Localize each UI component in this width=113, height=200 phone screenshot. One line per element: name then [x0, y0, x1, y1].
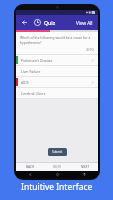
button[interactable]: NEXT — [71, 163, 98, 171]
staticText: Quiz — [44, 19, 56, 26]
staticText: Which of the following would be a cause … — [20, 35, 94, 39]
button[interactable]: Parkinson's Disease — [16, 55, 98, 65]
staticText: Cerebral Ulcers — [21, 91, 94, 96]
staticText: Intuitive Interface — [21, 181, 93, 193]
button[interactable]: Cerebral Ulcers — [16, 88, 98, 98]
staticText: Liver Failure — [21, 69, 94, 74]
staticText: Submit — [52, 150, 63, 154]
button[interactable]: Liver Failure — [16, 66, 98, 76]
button[interactable]: Submit — [48, 148, 67, 156]
staticText: 00:15 — [53, 165, 62, 169]
staticText: Parkinson's Disease — [21, 58, 91, 63]
button[interactable]: AIDS — [16, 77, 98, 87]
staticText: AIDS — [21, 80, 91, 85]
staticText: NEXT — [81, 165, 89, 169]
staticText: hypothermia? — [20, 40, 42, 44]
button[interactable]: Back — [20, 18, 29, 27]
staticText: 3/10 — [86, 47, 94, 52]
button[interactable]: Back — [16, 171, 44, 178]
button[interactable]: BACK — [16, 163, 44, 171]
button[interactable]: View All — [75, 18, 94, 28]
button[interactable]: Recents — [71, 171, 98, 178]
staticText: View All — [76, 20, 93, 26]
button[interactable]: Home — [44, 171, 71, 178]
staticText: BACK — [26, 165, 35, 169]
